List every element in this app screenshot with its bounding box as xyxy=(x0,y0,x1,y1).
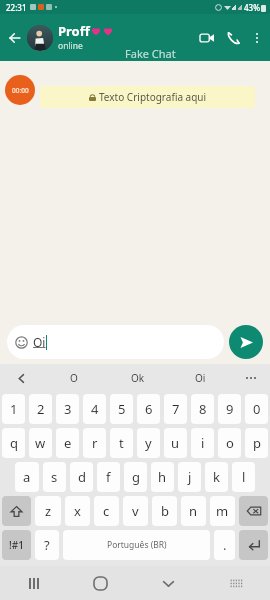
button[interactable]: More suggestions xyxy=(232,364,270,392)
button[interactable]: Texto Criptografia aqui xyxy=(40,86,255,108)
staticText: 6 xyxy=(145,400,153,418)
button[interactable]: Voice call xyxy=(220,25,246,51)
button[interactable]: Video call xyxy=(194,25,220,51)
staticText: Oi xyxy=(195,371,206,385)
staticText: 8 xyxy=(199,400,207,418)
button[interactable]: j xyxy=(178,462,201,492)
button[interactable]: Previous xyxy=(0,364,42,392)
button[interactable]: q xyxy=(2,428,25,458)
button[interactable]: 1 xyxy=(2,394,25,424)
staticText: k xyxy=(213,468,220,486)
button[interactable]: e xyxy=(56,428,79,458)
button[interactable]: 6 xyxy=(137,394,160,424)
button[interactable]: h xyxy=(151,462,174,492)
staticText: 43% xyxy=(244,2,260,13)
staticText: q xyxy=(10,434,18,452)
button[interactable]: Enter xyxy=(239,530,268,560)
staticText: c xyxy=(103,502,110,520)
button[interactable]: m xyxy=(210,496,235,526)
other: Emoji xyxy=(15,336,28,349)
button[interactable]: i xyxy=(191,428,214,458)
button[interactable]: k xyxy=(205,462,228,492)
button[interactable]: b xyxy=(152,496,177,526)
staticText: ? xyxy=(44,536,50,554)
button[interactable]: O xyxy=(42,364,106,392)
button[interactable]: r xyxy=(83,428,106,458)
button[interactable]: o xyxy=(218,428,241,458)
staticText: 9 xyxy=(226,400,234,418)
staticText: b xyxy=(161,502,169,520)
button[interactable]: l xyxy=(232,462,255,492)
button[interactable]: ? xyxy=(35,530,59,560)
button[interactable]: w xyxy=(29,428,52,458)
button[interactable]: 4 xyxy=(83,394,106,424)
staticText: p xyxy=(253,434,261,452)
staticText: . xyxy=(223,536,227,554)
button[interactable]: s xyxy=(43,462,66,492)
button[interactable]: Português (BR) xyxy=(63,530,210,560)
button[interactable]: 5 xyxy=(110,394,133,424)
button[interactable]: 9 xyxy=(218,394,241,424)
button[interactable]: Shift xyxy=(2,496,31,526)
staticText: 1 xyxy=(10,400,18,418)
staticText: u xyxy=(171,434,180,452)
button[interactable]: Recents xyxy=(0,566,67,600)
button[interactable]: 8 xyxy=(191,394,214,424)
staticText: t xyxy=(119,434,124,452)
button[interactable]: x xyxy=(65,496,90,526)
staticText: d xyxy=(78,468,86,486)
button[interactable]: Contact photo xyxy=(27,25,53,51)
staticText: 22:31 xyxy=(6,2,27,13)
button[interactable]: a xyxy=(15,462,39,492)
staticText: 00:00 xyxy=(12,86,29,95)
staticText: y xyxy=(145,434,152,452)
button[interactable]: u xyxy=(164,428,187,458)
staticText: n xyxy=(189,502,198,520)
button[interactable]: More options xyxy=(246,27,268,49)
staticText: r xyxy=(92,434,98,452)
button[interactable]: Home xyxy=(67,566,134,600)
staticText: 7 xyxy=(172,400,180,418)
button[interactable]: Back xyxy=(2,25,28,51)
button[interactable]: Send xyxy=(229,325,263,359)
staticText: i xyxy=(201,434,205,452)
staticText: w xyxy=(35,434,46,452)
button[interactable]: g xyxy=(124,462,147,492)
button[interactable]: z xyxy=(35,496,61,526)
button[interactable]: Backspace xyxy=(239,496,268,526)
button[interactable]: n xyxy=(181,496,206,526)
button[interactable]: 3 xyxy=(56,394,79,424)
staticText: g xyxy=(132,468,140,486)
button[interactable]: 0 xyxy=(245,394,268,424)
button[interactable]: f xyxy=(97,462,120,492)
button[interactable]: Hide keyboard xyxy=(134,566,202,600)
staticText: x xyxy=(74,502,81,520)
staticText: Texto Criptografia aqui xyxy=(99,90,207,104)
staticText: l xyxy=(242,468,246,486)
button[interactable]: p xyxy=(245,428,268,458)
button[interactable]: d xyxy=(70,462,93,492)
button[interactable]: c xyxy=(94,496,119,526)
button[interactable]: 2 xyxy=(29,394,52,424)
staticText: Fake Chat xyxy=(125,46,176,61)
button[interactable]: 7 xyxy=(164,394,187,424)
staticText: z xyxy=(45,502,52,520)
button[interactable]: Emoji xyxy=(7,325,224,359)
staticText: s xyxy=(51,468,58,486)
button[interactable]: . xyxy=(214,530,235,560)
button[interactable]: t xyxy=(110,428,133,458)
button[interactable]: Switch keyboard xyxy=(202,566,270,600)
staticText: Proff xyxy=(58,22,90,40)
button[interactable]: !#1 xyxy=(2,530,31,560)
staticText: e xyxy=(64,434,72,452)
staticText: Ok xyxy=(131,371,145,385)
staticText: o xyxy=(226,434,234,452)
button[interactable]: 00:00 xyxy=(5,75,35,105)
button[interactable]: Oi xyxy=(169,364,232,392)
staticText: Português (BR) xyxy=(107,539,167,551)
button[interactable]: Ok xyxy=(106,364,169,392)
staticText: 4 xyxy=(91,400,99,418)
button[interactable]: y xyxy=(137,428,160,458)
staticText: 3 xyxy=(64,400,72,418)
button[interactable]: v xyxy=(123,496,148,526)
